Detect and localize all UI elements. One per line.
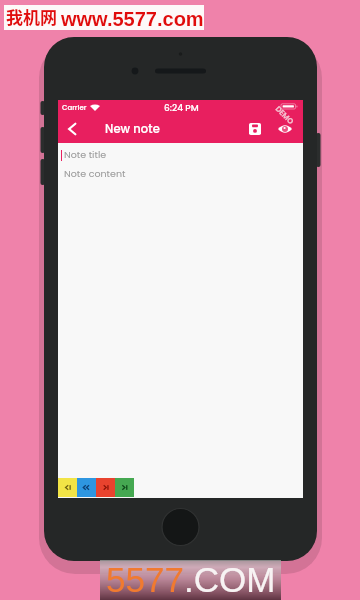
staticText: www.5577.com: [61, 8, 204, 30]
staticText: 6:24 PM: [164, 102, 199, 115]
button[interactable]: Format tool: [58, 478, 77, 497]
button[interactable]: Format tool: [77, 478, 96, 497]
staticText: Note content: [64, 167, 126, 180]
staticText: DEMO: [274, 104, 296, 126]
button[interactable]: Format tool: [96, 478, 115, 497]
staticText: Note title: [64, 148, 107, 161]
staticText: 我机网: [6, 4, 57, 29]
staticText: 5577: [106, 560, 184, 599]
button[interactable]: Save note: [242, 116, 268, 142]
button[interactable]: Format tool: [115, 478, 134, 497]
staticText: .COM: [184, 560, 276, 599]
button[interactable]: Preview note: [272, 116, 298, 142]
button[interactable]: Back: [58, 116, 86, 142]
staticText: New note: [105, 121, 160, 137]
staticText: Carrier: [62, 103, 87, 113]
